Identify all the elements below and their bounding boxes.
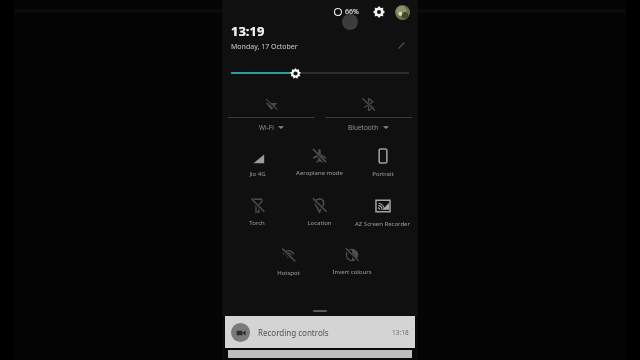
button[interactable]: Settings [371, 4, 387, 20]
staticText: Jio 4G [249, 170, 266, 178]
staticText: Portrait [372, 170, 394, 178]
button[interactable]: 66% [332, 7, 361, 17]
staticText: 13:19 [231, 22, 265, 40]
button[interactable]: Recording controls [225, 316, 415, 348]
button[interactable]: Invert colours [320, 246, 383, 278]
staticText: Monday, 17 October [231, 42, 298, 52]
staticText: Invert colours [332, 268, 372, 276]
button[interactable]: AZ Screen Recorder [351, 196, 414, 230]
staticText: Location [307, 219, 332, 227]
staticText: Aeroplane mode [296, 169, 343, 177]
staticText: Torch [249, 219, 265, 227]
staticText: Aeroplane mode [246, 171, 391, 195]
button[interactable]: Expand [222, 306, 418, 316]
button[interactable]: Portrait [351, 146, 414, 180]
button[interactable]: User avatar [395, 5, 410, 20]
button[interactable]: Bluetooth [335, 0, 640, 56]
staticText: 13:18 [392, 328, 409, 337]
button[interactable]: Wi-Fi [228, 94, 315, 132]
button[interactable]: Location [288, 196, 351, 229]
staticText: 66% [345, 7, 359, 17]
staticText: Hotspot [277, 269, 300, 277]
button[interactable]: Edit [394, 38, 408, 52]
staticText: Location [280, 326, 357, 350]
button[interactable]: Jio 4G [226, 146, 288, 180]
button[interactable]: Aeroplane mode [0, 99, 640, 202]
button[interactable]: Aeroplane mode [288, 146, 351, 179]
staticText: Wi-Fi [259, 123, 274, 132]
button[interactable]: Bluetooth [325, 94, 412, 132]
button[interactable]: Hotspot [257, 246, 320, 279]
button[interactable]: Brightness [222, 64, 418, 82]
staticText: Recording controls [258, 327, 329, 338]
staticText: Bluetooth [348, 123, 379, 132]
button[interactable]: Torch [226, 196, 288, 229]
button[interactable]: Location [0, 254, 640, 357]
staticText: AZ Screen Recorder [355, 220, 410, 228]
button[interactable]: Wi-Fi [0, 0, 304, 56]
